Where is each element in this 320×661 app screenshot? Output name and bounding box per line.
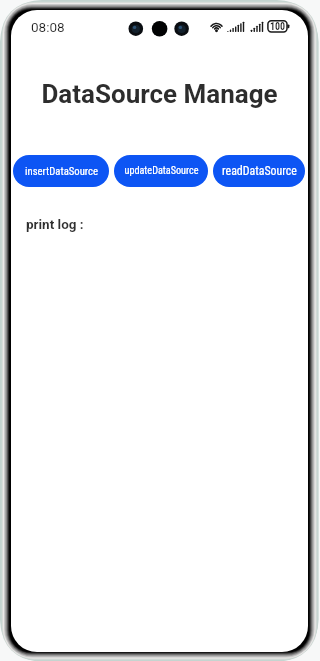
- staticText: 100: [270, 21, 286, 33]
- button[interactable]: insertDataSource: [13, 155, 109, 187]
- staticText: DataSource Manage: [11, 79, 308, 109]
- button[interactable]: updateDataSource: [114, 155, 208, 187]
- staticText: readDataSource: [222, 164, 297, 178]
- staticText: updateDataSource: [124, 165, 199, 177]
- staticText: print log :: [26, 216, 84, 232]
- staticText: 08:08: [31, 19, 65, 35]
- staticText: insertDataSource: [25, 165, 98, 178]
- button[interactable]: readDataSource: [213, 155, 305, 187]
